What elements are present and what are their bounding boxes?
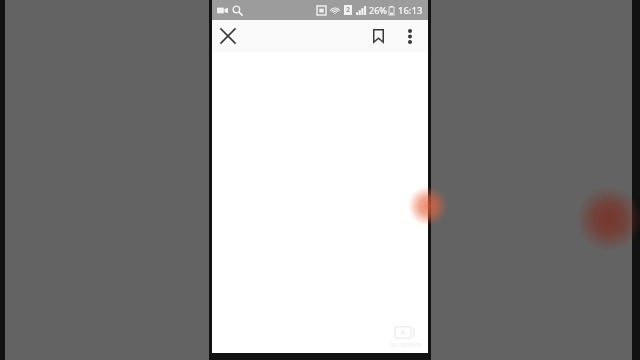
- button[interactable]: More options: [394, 20, 426, 52]
- staticText: RECORDED: [390, 341, 422, 349]
- button[interactable]: Close: [212, 20, 244, 52]
- button[interactable]: Bookmark: [362, 20, 394, 52]
- staticText: 26%: [369, 4, 387, 16]
- staticText: 16:13: [398, 4, 423, 17]
- staticText: 2: [346, 5, 351, 15]
